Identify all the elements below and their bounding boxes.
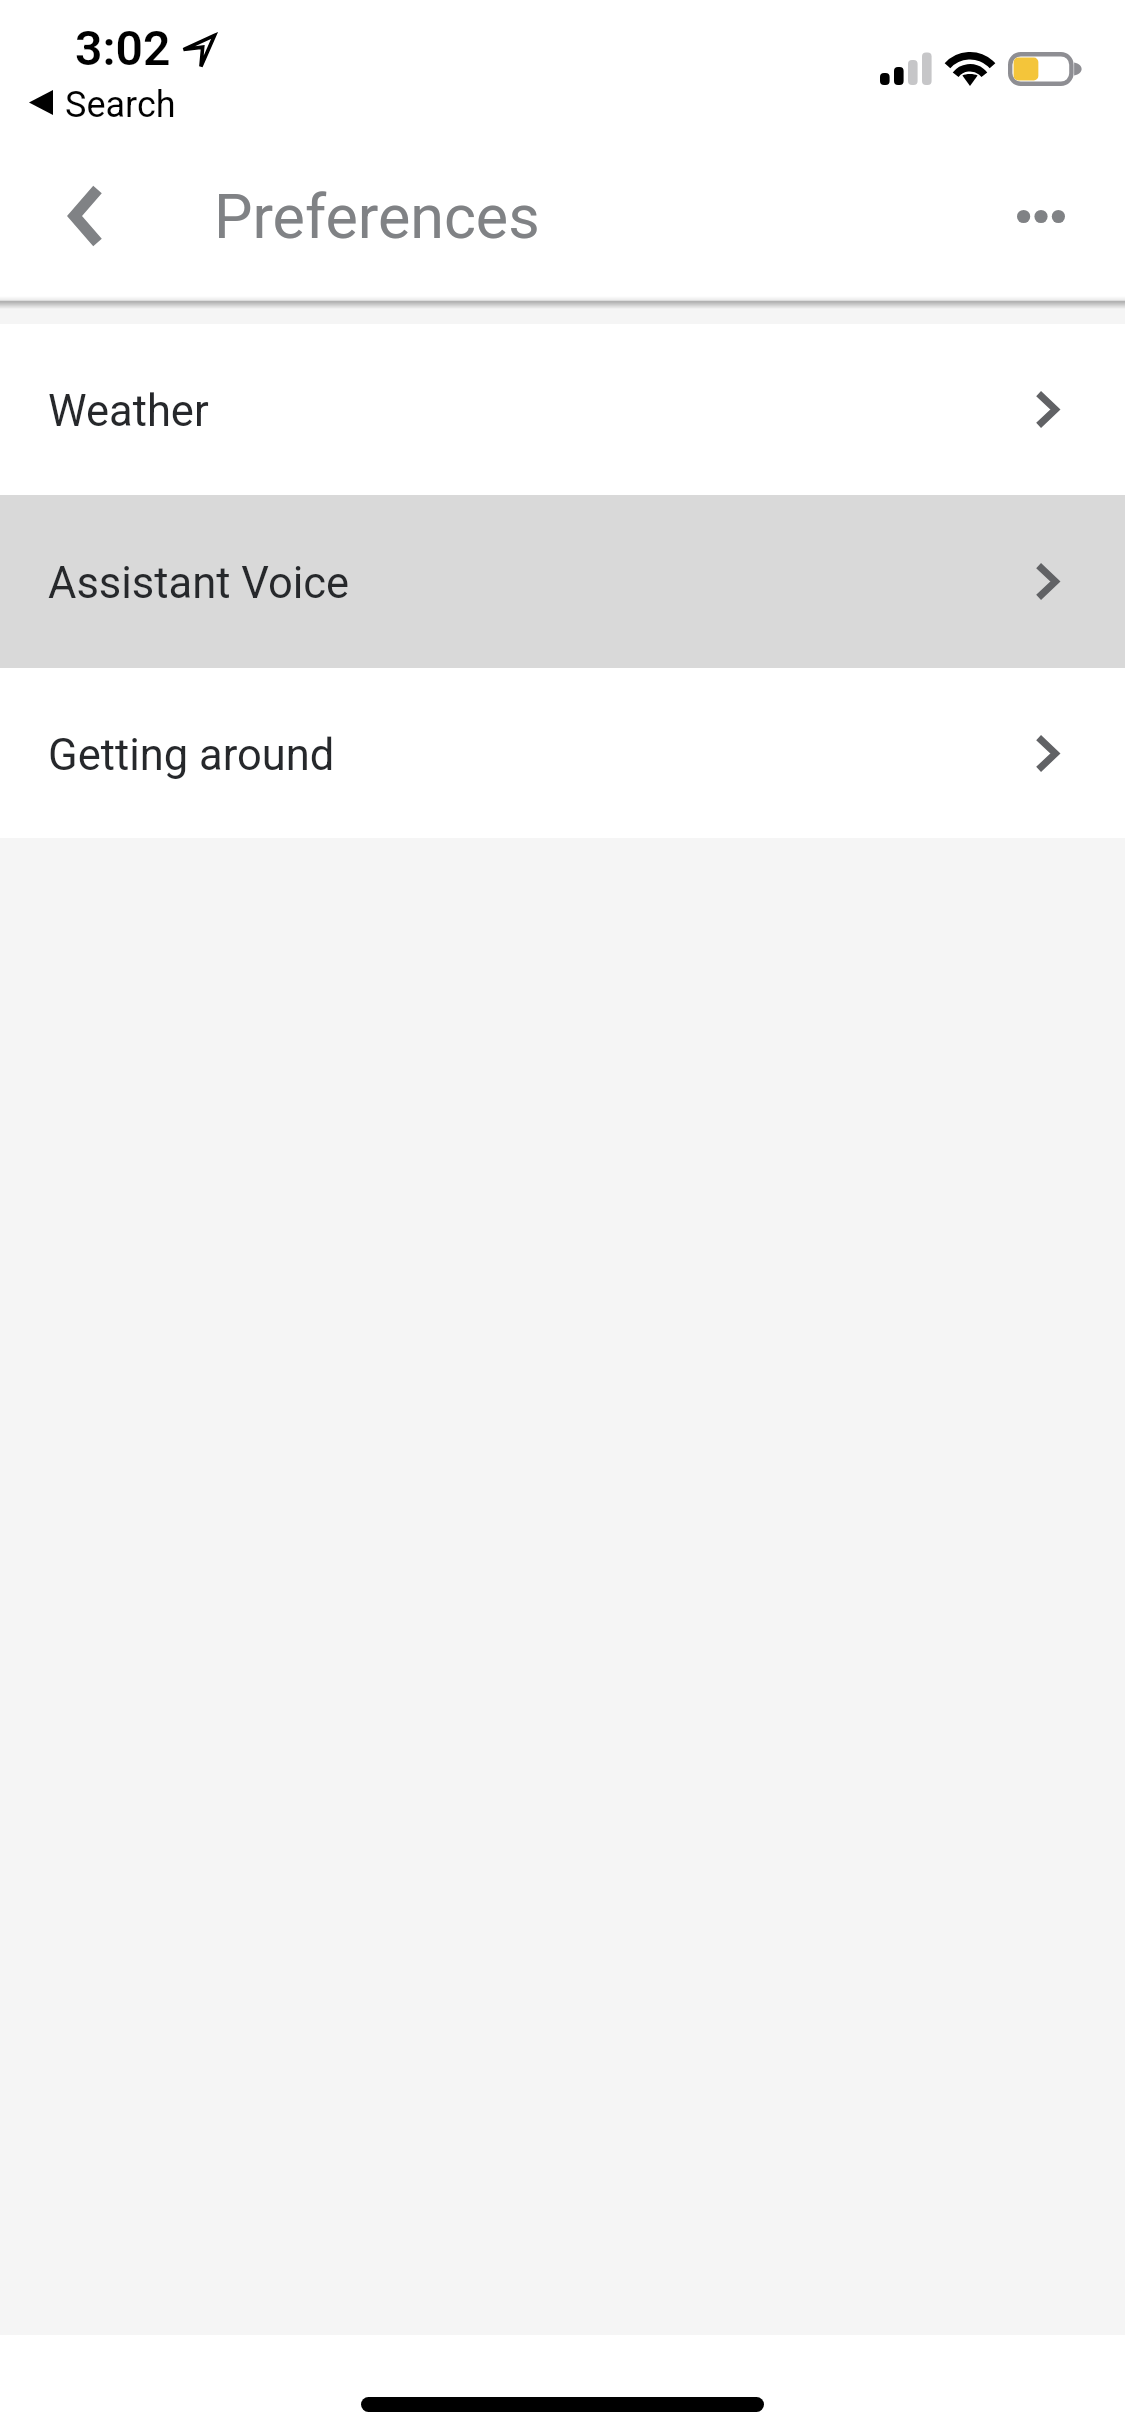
staticText: Weather <box>48 386 209 437</box>
staticText: Search <box>65 84 176 126</box>
button[interactable]: Back <box>38 174 134 258</box>
other: Wi-Fi <box>946 50 994 86</box>
other: Battery 45 percent <box>1008 52 1086 86</box>
button[interactable]: Getting around <box>0 668 1125 838</box>
button[interactable]: Assistant Voice <box>0 495 1125 668</box>
button[interactable]: Weather <box>0 324 1125 495</box>
staticText: Getting around <box>48 730 335 781</box>
other: Location in use <box>183 35 215 67</box>
button[interactable]: Search <box>20 80 190 128</box>
staticText: 3:02 <box>75 20 171 76</box>
other: Cellular signal <box>880 52 933 85</box>
staticText: Assistant Voice <box>48 558 350 609</box>
button[interactable]: More options <box>985 166 1097 266</box>
staticText: Preferences <box>214 181 540 252</box>
